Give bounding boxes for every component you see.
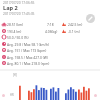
staticText: 28.51 (km) [7,22,24,26]
button[interactable]: Avg. 29.8 / Max 58.1 (km/h) [0,41,100,48]
staticText: Avg. 29.8 / Max 58.1 (km/h) [7,42,49,46]
staticText: Avg. 151 / Max 173 (bpm) [7,48,47,52]
staticText: Avg. 158.5 / Max 427.0 (W) [7,55,48,59]
staticText: 4.06(kg) [45,29,58,33]
button[interactable]: 28.51 (km) [0,21,100,28]
staticText: Avg. 80.1 / Max 218.0 (rpm) [7,61,50,65]
button[interactable]: Avg. 158.5 / Max 427.0 (W) [0,54,100,61]
button[interactable]: 4.06(kg) [45,28,93,34]
staticText: 7:18 [47,22,54,26]
button[interactable]: 193.4 (m) [0,28,100,35]
staticText: 242.5 (m) [68,22,83,26]
staticText: 50.0 / 50.0 (%) [7,35,29,39]
staticText: 2017/07/20 17:06:55 [3,0,35,4]
staticText: 193.4 (m) [7,29,22,33]
staticText: -0.1 (m) [68,29,80,33]
button[interactable]: Avg. 80.1 / Max 218.0 (rpm) [0,60,100,67]
button[interactable]: 7:18 [45,21,93,27]
button[interactable]: Avg. 151 / Max 173 (bpm) [0,47,100,54]
staticText: Lap 2 [3,4,18,12]
button[interactable]: Edit [86,14,95,23]
staticText: [H] [13,73,17,77]
staticText: HR [10,93,14,97]
button[interactable]: 50.0 / 50.0 (%) [0,34,100,41]
staticText: 2017/07/20 17:45:35 [3,11,35,15]
